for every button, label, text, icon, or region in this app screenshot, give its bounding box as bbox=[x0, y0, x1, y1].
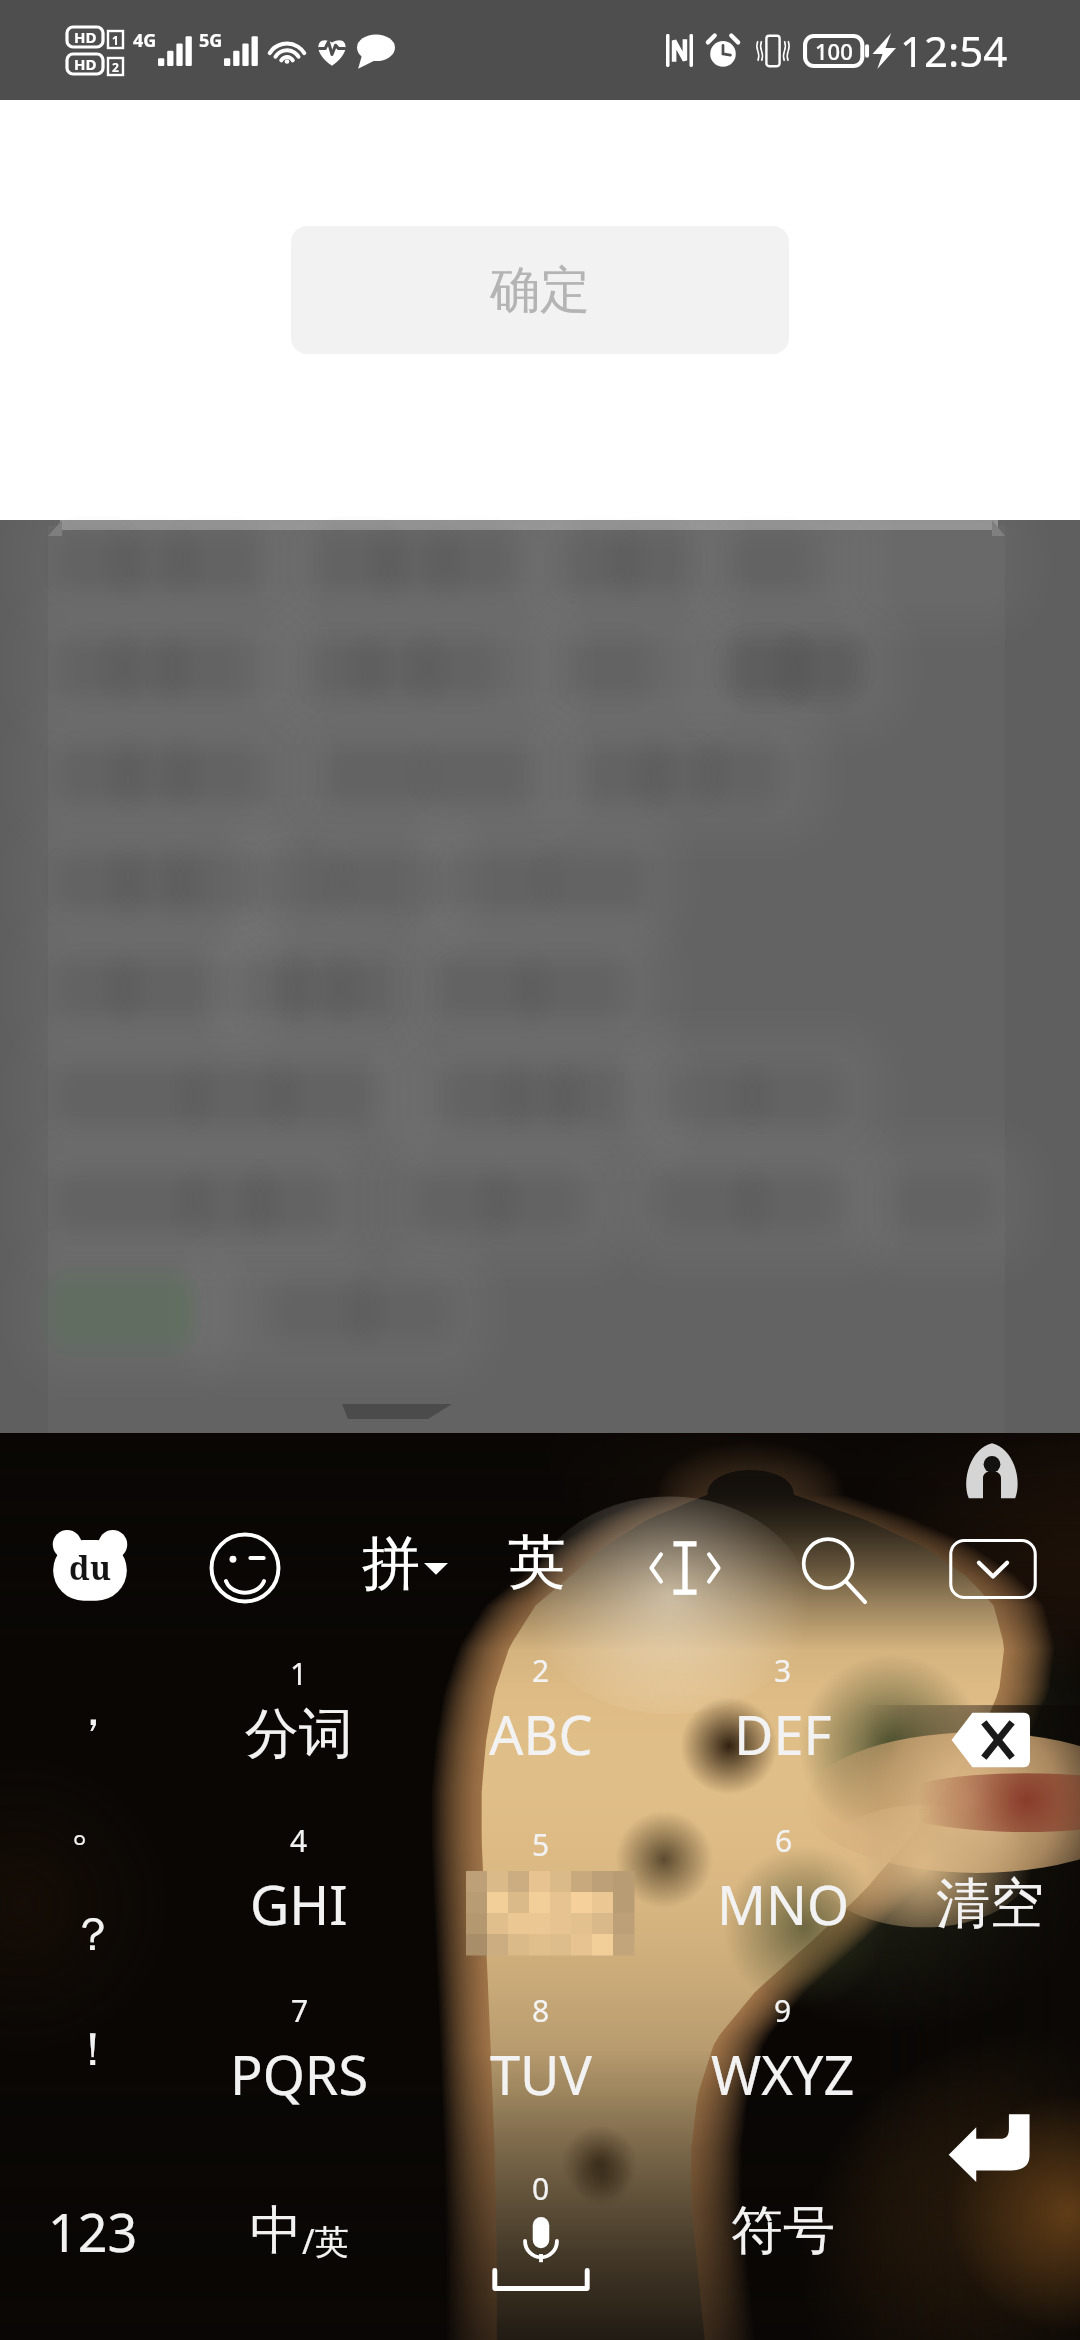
staticText: 123 bbox=[48, 2196, 138, 2267]
button[interactable]: 2 bbox=[420, 1625, 662, 1795]
staticText: 0 bbox=[532, 2168, 550, 2209]
staticText: 1 bbox=[112, 32, 119, 48]
button[interactable]: 123 bbox=[28, 2146, 158, 2316]
staticText: 12:54 bbox=[900, 22, 1008, 79]
staticText: HD bbox=[74, 54, 97, 74]
button[interactable]: 7 bbox=[178, 1965, 420, 2135]
button[interactable]: 拼 bbox=[362, 1526, 448, 1600]
button[interactable]: 。 bbox=[28, 1795, 158, 1965]
staticText: 7 bbox=[291, 1990, 309, 2031]
staticText: 4G bbox=[133, 28, 157, 53]
staticText: MNO bbox=[717, 1867, 850, 1941]
button[interactable]: ！ bbox=[28, 1965, 158, 2135]
other: Backspace bbox=[950, 1711, 1030, 1769]
staticText: /英 bbox=[302, 2218, 349, 2264]
button[interactable]: Emoji bbox=[209, 1532, 281, 1604]
button[interactable]: 9 bbox=[662, 1965, 904, 2135]
staticText: 2 bbox=[112, 59, 119, 75]
button[interactable]: 清空 bbox=[900, 1795, 1080, 1965]
staticText: 3 bbox=[774, 1650, 792, 1691]
staticText: 2 bbox=[532, 1650, 550, 1691]
button[interactable]: 8 bbox=[420, 1965, 662, 2135]
staticText: 分词 bbox=[245, 1700, 353, 1768]
staticText: 符号 bbox=[731, 2198, 835, 2264]
staticText: 拼 bbox=[362, 1527, 420, 1600]
staticText: 8 bbox=[532, 1990, 550, 2031]
staticText: ， bbox=[70, 1681, 116, 1739]
staticText: ABC bbox=[489, 1697, 593, 1771]
staticText: 9 bbox=[774, 1990, 792, 2031]
staticText: PQRS bbox=[230, 2037, 369, 2111]
button[interactable]: Enter bbox=[900, 1965, 1080, 2135]
button[interactable]: 确定 bbox=[291, 226, 789, 354]
staticText: 5G bbox=[199, 28, 223, 53]
staticText: 1 bbox=[290, 1653, 308, 1694]
staticText: 。 bbox=[70, 1796, 116, 1854]
button[interactable]: 6 bbox=[662, 1795, 904, 1965]
staticText: GHI bbox=[250, 1867, 348, 1941]
button[interactable]: Search bbox=[797, 1534, 871, 1608]
staticText: 4 bbox=[290, 1820, 308, 1861]
button[interactable]: 符号 bbox=[662, 2146, 904, 2316]
button[interactable]: Space, voice input bbox=[420, 2146, 662, 2316]
button[interactable]: 3 bbox=[662, 1625, 904, 1795]
button[interactable]: 5 bbox=[420, 1795, 662, 1965]
staticText: 5 bbox=[532, 1824, 550, 1865]
button[interactable]: 中 bbox=[178, 2146, 420, 2316]
staticText: ！ bbox=[70, 2021, 116, 2079]
button[interactable]: Hide keyboard bbox=[949, 1538, 1037, 1600]
button[interactable]: 英 bbox=[508, 1526, 566, 1599]
staticText: du bbox=[69, 1546, 112, 1590]
staticText: WXYZ bbox=[711, 2037, 855, 2111]
button[interactable]: ， bbox=[28, 1625, 158, 1795]
staticText: 100 bbox=[815, 36, 853, 66]
other: Enter bbox=[947, 2110, 1033, 2182]
staticText: 中 bbox=[250, 2198, 302, 2264]
staticText: 清空 bbox=[936, 1870, 1044, 1938]
staticText: 6 bbox=[775, 1820, 793, 1861]
staticText: TUV bbox=[490, 2037, 592, 2111]
button[interactable]: Baidu input settings bbox=[52, 1530, 128, 1606]
staticText: ？ bbox=[70, 1906, 116, 1964]
button[interactable]: Assistant bbox=[963, 1442, 1021, 1500]
button[interactable]: Backspace bbox=[900, 1625, 1080, 1795]
staticText: 确定 bbox=[490, 259, 590, 322]
button[interactable]: 1 bbox=[178, 1625, 420, 1795]
button[interactable]: 4 bbox=[178, 1795, 420, 1965]
staticText: HD bbox=[74, 27, 97, 47]
button[interactable]: Move cursor bbox=[645, 1534, 725, 1602]
staticText: 英 bbox=[508, 1526, 566, 1599]
staticText: DEF bbox=[734, 1697, 832, 1771]
